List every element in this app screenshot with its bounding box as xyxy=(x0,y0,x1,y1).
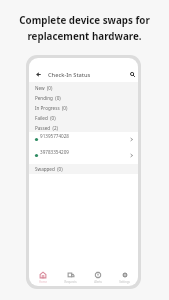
staticText: Alerts xyxy=(94,280,102,284)
staticText: Check-In Status xyxy=(48,71,91,79)
staticText: New (0) xyxy=(35,85,53,91)
staticText: Complete device swaps for replacement ha… xyxy=(19,14,150,43)
staticText: 91395774028 xyxy=(40,133,69,139)
staticText: Requests xyxy=(64,280,77,284)
button[interactable]: In Progress (0) xyxy=(29,102,138,112)
button[interactable]: Alerts xyxy=(84,269,111,286)
staticText: Pending (0) xyxy=(35,95,61,101)
staticText: Home xyxy=(39,280,47,284)
button[interactable]: Requests xyxy=(57,269,84,286)
button[interactable]: New (0) xyxy=(29,82,138,92)
button[interactable]: Search xyxy=(128,70,137,79)
button[interactable]: Home xyxy=(29,269,57,286)
staticText: 39783354209 xyxy=(40,149,69,155)
staticText: Passed (2) xyxy=(35,125,58,131)
button[interactable]: Settings xyxy=(111,269,138,286)
button[interactable]: Swapped (0) xyxy=(29,164,138,174)
button[interactable]: Back xyxy=(34,70,43,79)
button[interactable]: 91395774028 xyxy=(29,132,138,147)
button[interactable]: Passed (2) xyxy=(29,122,138,132)
staticText: Settings xyxy=(119,280,130,284)
staticText: Swapped (0) xyxy=(35,166,63,172)
button[interactable]: 39783354209 xyxy=(29,147,138,164)
staticText: In Progress (0) xyxy=(35,105,68,111)
button[interactable]: Failed (0) xyxy=(29,112,138,122)
button[interactable]: Pending (0) xyxy=(29,92,138,102)
staticText: Failed (0) xyxy=(35,115,56,121)
